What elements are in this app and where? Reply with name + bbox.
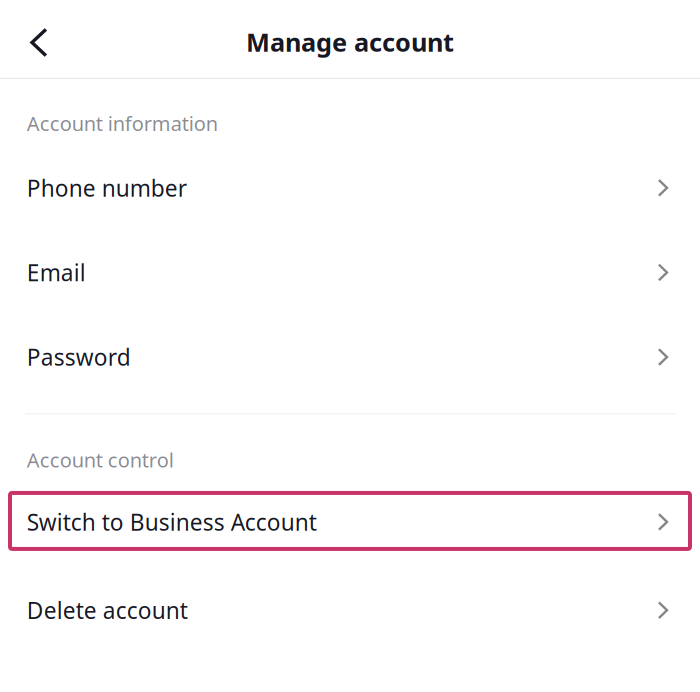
staticText: Password [27,342,131,372]
staticText: Delete account [27,595,188,625]
button[interactable]: Email [0,230,700,315]
staticText: Account information [27,110,218,137]
staticText: Account control [27,446,174,473]
staticText: Switch to Business Account [27,507,317,537]
staticText: Phone number [27,173,187,203]
button[interactable]: Back [0,6,68,71]
button[interactable]: Phone number [0,146,700,230]
button[interactable]: Switch to Business Account [0,493,700,551]
staticText: Manage account [246,25,454,59]
button[interactable]: Delete account [0,568,700,652]
staticText: Email [27,257,86,287]
button[interactable]: Password [0,315,700,399]
